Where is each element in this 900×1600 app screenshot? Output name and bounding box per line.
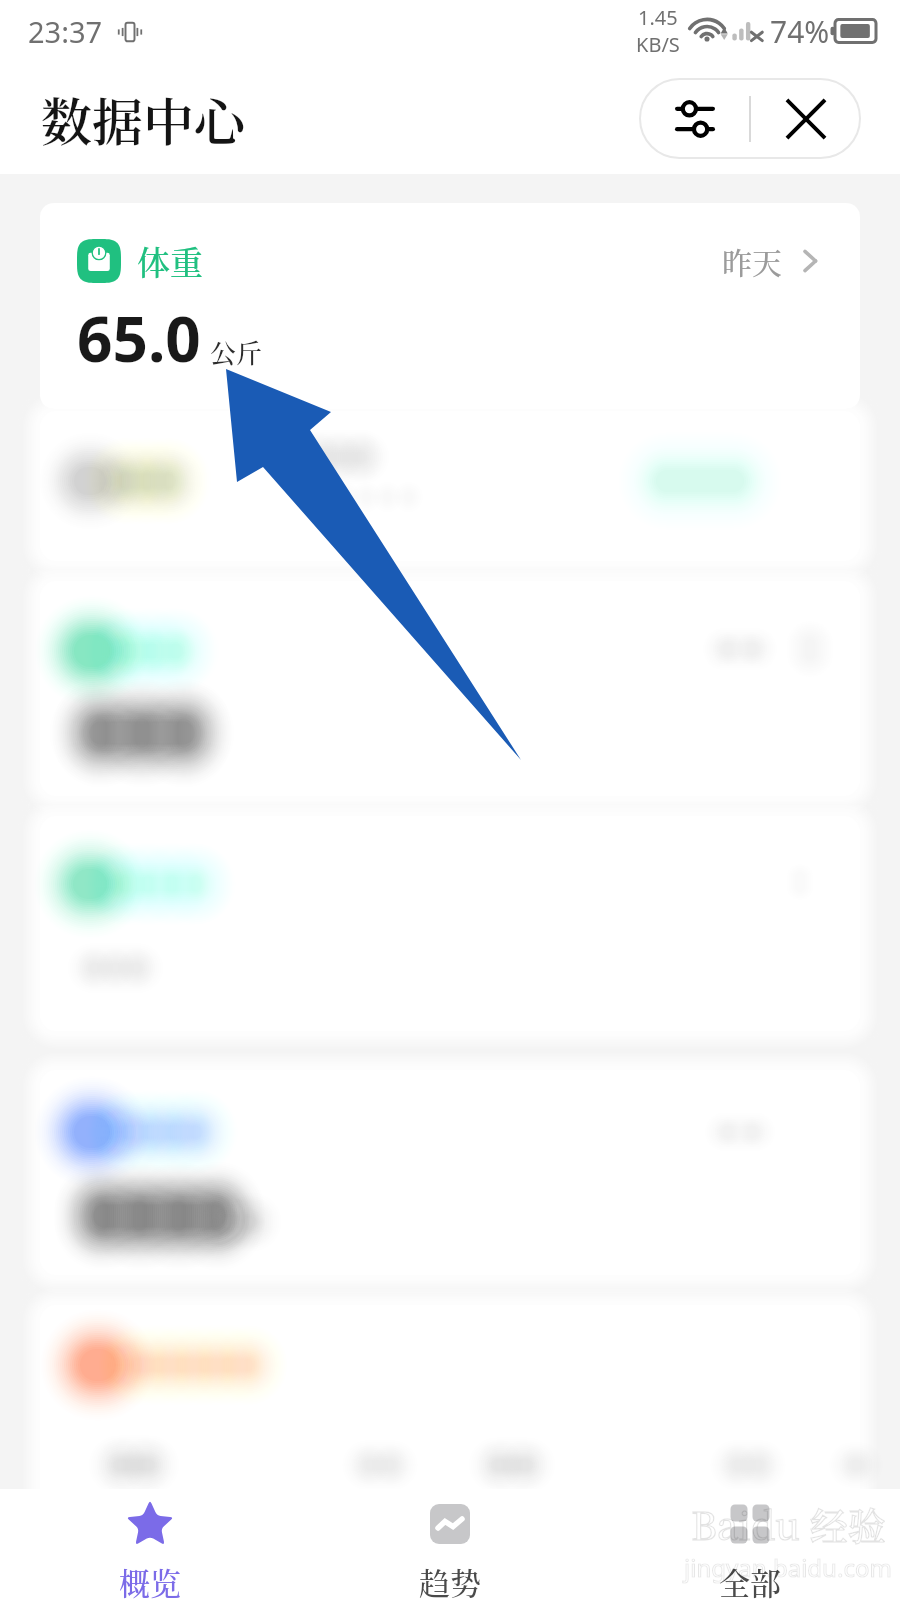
button[interactable] [40, 411, 860, 561]
button[interactable] [40, 581, 860, 796]
button[interactable]: 概览 [0, 1489, 300, 1600]
staticText: 74% [770, 11, 830, 52]
button[interactable] [40, 816, 860, 1031]
button[interactable]: Filter settings [640, 79, 749, 158]
staticText: Baidu 经验 [691, 1496, 886, 1551]
button[interactable] [40, 1305, 860, 1575]
staticText: 公斤 [210, 333, 263, 370]
staticText: 全部 [719, 1559, 781, 1600]
staticText: 65.0 [77, 296, 201, 380]
staticText: 体重 [137, 237, 203, 284]
staticText: 数据中心 [41, 82, 246, 155]
button[interactable]: 体重 [40, 203, 860, 409]
button[interactable]: 全部 [600, 1489, 900, 1600]
button[interactable] [40, 1070, 860, 1275]
button[interactable]: Close [751, 79, 860, 158]
staticText: KB/S [636, 31, 680, 58]
staticText: 1.45 [638, 4, 678, 31]
staticText: 23:37 [28, 12, 103, 51]
button[interactable]: 昨天 [712, 229, 834, 292]
staticText: 昨天 [722, 239, 782, 282]
staticText: jingyan.baidu.com [684, 1551, 892, 1584]
staticText: 概览 [119, 1559, 181, 1600]
button[interactable]: 趋势 [300, 1489, 600, 1600]
staticText: 趋势 [419, 1559, 481, 1600]
